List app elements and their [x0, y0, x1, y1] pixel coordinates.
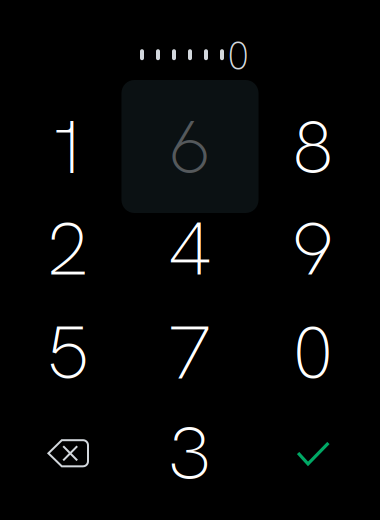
staticText: 7 — [169, 304, 211, 401]
button[interactable]: Delete — [7, 403, 129, 504]
staticText: 1 — [47, 98, 89, 196]
button[interactable]: 7 — [129, 302, 251, 403]
button[interactable]: 5 — [7, 302, 129, 403]
button[interactable]: 2 — [7, 198, 129, 299]
staticText: 9 — [292, 200, 334, 297]
staticText: 8 — [292, 98, 334, 196]
staticText: 0 — [227, 29, 249, 81]
staticText: 2 — [47, 200, 89, 297]
button[interactable]: 9 — [252, 198, 374, 299]
button[interactable]: 4 — [129, 198, 251, 299]
staticText: 3 — [169, 404, 211, 502]
staticText: 5 — [47, 304, 89, 401]
staticText: 6 — [169, 98, 211, 196]
button[interactable]: Confirm — [252, 403, 374, 504]
staticText: 0 — [292, 304, 334, 401]
button[interactable]: 6 — [129, 96, 251, 197]
button[interactable]: 1 — [7, 96, 129, 197]
button[interactable]: 8 — [252, 96, 374, 197]
button[interactable]: 3 — [129, 402, 251, 503]
staticText: 4 — [169, 200, 211, 297]
button[interactable]: 0 — [252, 302, 374, 403]
